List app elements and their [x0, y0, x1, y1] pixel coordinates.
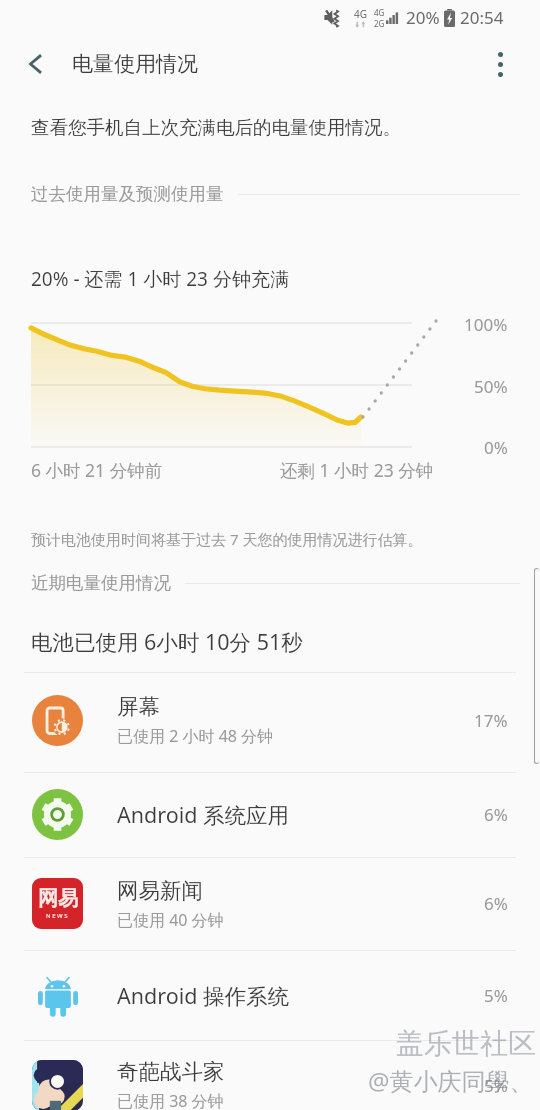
- staticText: 已使用 38 分钟: [117, 1090, 224, 1110]
- staticText: 电池已使用 6小时 10分 51秒: [31, 627, 303, 656]
- staticText: 6%: [484, 803, 508, 826]
- staticText: 4G: [374, 7, 385, 18]
- button[interactable]: More options: [479, 43, 521, 85]
- staticText: 屏幕: [117, 693, 160, 720]
- staticText: 6%: [484, 892, 508, 915]
- staticText: 预计电池使用时间将基于过去 7 天您的使用情况进行估算。: [31, 529, 423, 549]
- staticText: 2G: [374, 18, 385, 29]
- staticText: 查看您手机自上次充满电后的电量使用情况。: [31, 116, 401, 139]
- staticText: 还剩 1 小时 23 分钟: [280, 458, 434, 482]
- staticText: 50%: [474, 375, 508, 398]
- staticText: 电量使用情况: [72, 51, 198, 77]
- staticText: @黄小庆同學、: [368, 1064, 534, 1097]
- staticText: 近期电量使用情况: [31, 572, 171, 594]
- staticText: 过去使用量及预测使用量: [31, 183, 224, 205]
- staticText: 盖乐世社区: [396, 1026, 536, 1061]
- staticText: 网易: [38, 886, 78, 911]
- staticText: 17%: [474, 709, 508, 732]
- staticText: 已使用 40 分钟: [117, 909, 224, 931]
- staticText: 6 小时 21 分钟前: [31, 458, 163, 482]
- staticText: 20% - 还需 1 小时 23 分钟充满: [31, 266, 289, 292]
- staticText: Android 操作系统: [117, 981, 290, 1010]
- staticText: 20%: [406, 6, 440, 29]
- staticText: Android 系统应用: [117, 800, 290, 829]
- staticText: 5%: [484, 984, 508, 1007]
- staticText: 0%: [484, 436, 508, 459]
- button[interactable]: 屏幕: [0, 672, 540, 768]
- staticText: 已使用 2 小时 48 分钟: [117, 725, 274, 747]
- staticText: 网易新闻: [117, 877, 203, 904]
- button[interactable]: Android 操作系统: [0, 950, 540, 1040]
- button[interactable]: Android 系统应用: [0, 772, 540, 857]
- button[interactable]: 奇葩战斗家: [0, 1040, 540, 1110]
- button[interactable]: 网易: [0, 857, 540, 950]
- staticText: 5%: [484, 1074, 508, 1097]
- staticText: NEWS: [46, 912, 70, 920]
- staticText: 奇葩战斗家: [117, 1058, 225, 1085]
- staticText: 4G: [354, 7, 367, 21]
- staticText: 100%: [464, 313, 508, 336]
- button[interactable]: Back: [14, 42, 58, 86]
- staticText: 20:54: [460, 6, 504, 29]
